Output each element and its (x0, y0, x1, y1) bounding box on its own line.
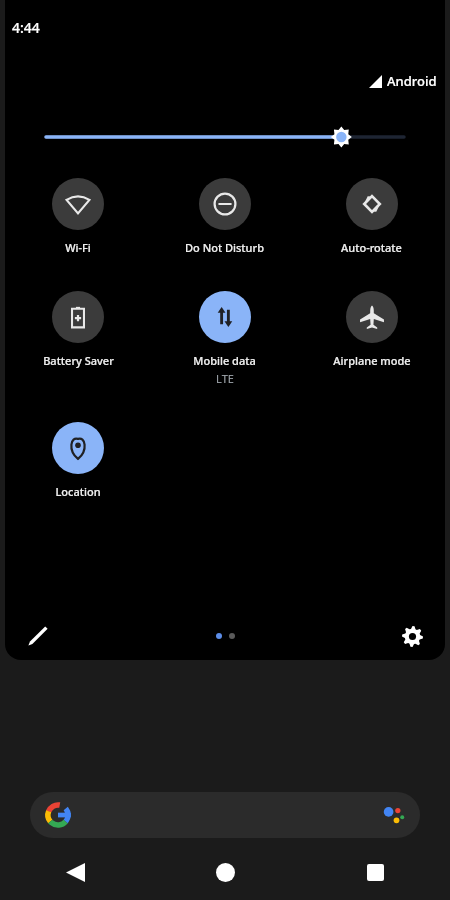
button[interactable]: Settings (392, 616, 432, 656)
staticText: Android (387, 72, 437, 90)
button[interactable]: Auto-rotate (298, 178, 445, 255)
button[interactable]: Recents (300, 844, 450, 900)
staticText: Battery Saver (43, 353, 114, 368)
button[interactable]: Location (5, 422, 151, 499)
button[interactable]: Do Not Disturb (151, 178, 298, 255)
staticText: Do Not Disturb (185, 240, 264, 255)
button[interactable]: Google search (30, 792, 420, 838)
button[interactable]: Wi-Fi (5, 178, 151, 255)
button[interactable]: Edit tiles (18, 616, 58, 656)
staticText: LTE (216, 371, 234, 386)
button[interactable]: Mobile data (151, 291, 298, 386)
staticText: Location (55, 484, 101, 499)
button[interactable]: Back (0, 844, 150, 900)
staticText: Mobile data (193, 353, 256, 368)
staticText: Auto-rotate (341, 240, 402, 255)
staticText: Airplane mode (333, 353, 411, 368)
button[interactable]: Battery Saver (5, 291, 151, 368)
button[interactable]: Brightness (46, 122, 404, 152)
button[interactable]: Airplane mode (298, 291, 445, 368)
staticText: 4:44 (12, 18, 40, 37)
button[interactable]: Home (150, 844, 300, 900)
staticText: Wi-Fi (65, 240, 91, 255)
